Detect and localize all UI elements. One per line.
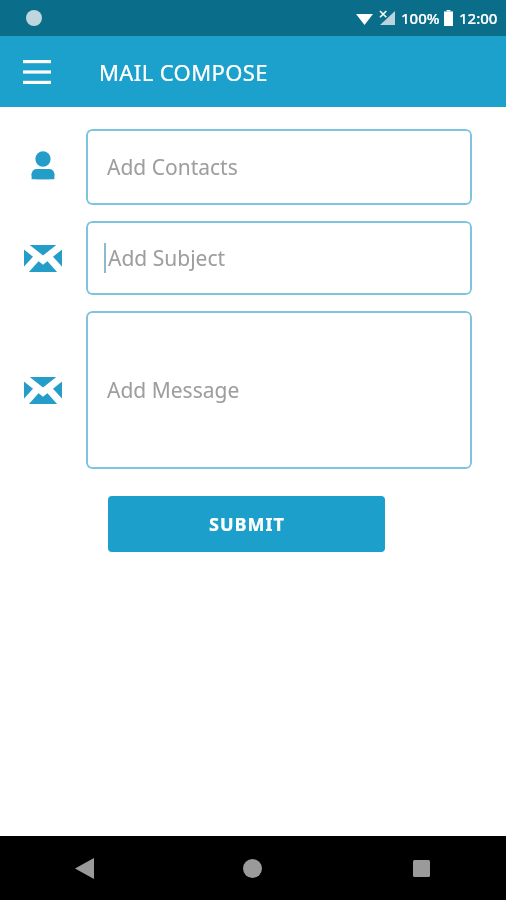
staticText: SUBMIT <box>209 512 285 537</box>
staticText: Add Message <box>107 376 240 405</box>
button[interactable]: Open navigation menu <box>12 47 62 97</box>
button[interactable]: Home <box>168 836 337 900</box>
staticText: 100% <box>401 8 440 28</box>
other: Contacts <box>28 150 58 184</box>
button[interactable]: Add Contacts <box>86 129 472 205</box>
other: Mail <box>24 245 62 272</box>
button[interactable]: SUBMIT <box>108 496 385 552</box>
staticText: 12:00 <box>459 8 498 28</box>
button[interactable]: Recent apps <box>337 836 506 900</box>
button[interactable]: Back <box>0 836 168 900</box>
button[interactable]: Add Subject <box>86 221 472 295</box>
staticText: Add Subject <box>108 244 226 273</box>
other: Mail <box>24 377 62 404</box>
staticText: MAIL COMPOSE <box>99 57 268 87</box>
staticText: Add Contacts <box>107 153 238 182</box>
button[interactable]: Add Message <box>86 311 472 469</box>
